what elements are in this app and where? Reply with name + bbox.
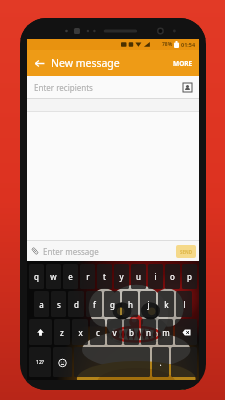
staticText: k: [164, 299, 169, 310]
button[interactable]: .: [152, 347, 169, 377]
button[interactable]: i: [148, 264, 163, 289]
staticText: a: [39, 299, 44, 310]
button[interactable]: Enter message: [43, 246, 176, 257]
button[interactable]: s: [51, 291, 66, 317]
staticText: z: [60, 327, 64, 338]
button[interactable]: z: [54, 319, 70, 345]
staticText: 01:54: [181, 41, 196, 48]
button[interactable]: p: [182, 264, 197, 289]
staticText: b: [129, 327, 134, 338]
button[interactable]: [171, 347, 197, 377]
staticText: h: [128, 299, 133, 310]
staticText: Enter recipients: [34, 82, 178, 93]
staticText: u: [136, 271, 141, 282]
button[interactable]: m: [158, 319, 173, 345]
staticText: 12?: [36, 359, 44, 366]
button[interactable]: Send: [176, 245, 196, 258]
button[interactable]: d: [68, 291, 84, 317]
staticText: s: [57, 299, 61, 310]
button[interactable]: Back: [27, 51, 51, 75]
button[interactable]: Attach: [27, 243, 43, 259]
staticText: MORE: [173, 59, 193, 68]
button[interactable]: v: [107, 319, 122, 345]
staticText: p: [187, 271, 192, 282]
button[interactable]: k: [158, 291, 174, 317]
button[interactable]: t: [97, 264, 112, 289]
staticText: l: [183, 299, 186, 310]
staticText: j: [147, 299, 150, 310]
staticText: i: [154, 271, 157, 282]
button[interactable]: l: [176, 291, 192, 317]
staticText: v: [112, 327, 117, 338]
staticText: n: [146, 327, 151, 338]
staticText: e: [68, 271, 73, 282]
staticText: q: [34, 271, 39, 282]
button[interactable]: MORE: [167, 55, 199, 72]
button[interactable]: u: [131, 264, 146, 289]
staticText: m: [162, 327, 170, 338]
staticText: .: [159, 357, 162, 368]
staticText: o: [170, 271, 175, 282]
staticText: 78%: [162, 41, 173, 48]
button[interactable]: c: [90, 319, 105, 345]
staticText: f: [93, 299, 96, 310]
button[interactable]: b: [124, 319, 139, 345]
button[interactable]: Enter recipients: [27, 76, 199, 98]
staticText: g: [110, 299, 115, 310]
button[interactable]: [74, 347, 150, 377]
button[interactable]: o: [165, 264, 180, 289]
button[interactable]: Backspace: [175, 319, 197, 345]
staticText: t: [103, 271, 106, 282]
button[interactable]: a: [34, 291, 49, 317]
button[interactable]: h: [122, 291, 138, 317]
button[interactable]: Emoji: [53, 347, 72, 377]
button[interactable]: y: [114, 264, 129, 289]
staticText: d: [74, 299, 79, 310]
button[interactable]: r: [80, 264, 95, 289]
staticText: SEND: [180, 249, 192, 255]
button[interactable]: e: [63, 264, 78, 289]
button[interactable]: f: [86, 291, 102, 317]
button[interactable]: x: [72, 319, 88, 345]
staticText: New message: [51, 56, 167, 70]
staticText: y: [119, 271, 124, 282]
button[interactable]: 12?: [29, 347, 51, 377]
button[interactable]: Shift: [29, 319, 52, 345]
button[interactable]: w: [46, 264, 61, 289]
button[interactable]: g: [104, 291, 120, 317]
button[interactable]: Contacts: [178, 78, 196, 96]
staticText: r: [86, 271, 90, 282]
button[interactable]: j: [140, 291, 156, 317]
staticText: c: [96, 327, 100, 338]
button[interactable]: n: [141, 319, 156, 345]
button[interactable]: q: [29, 264, 44, 289]
staticText: w: [50, 271, 57, 282]
staticText: x: [78, 327, 83, 338]
